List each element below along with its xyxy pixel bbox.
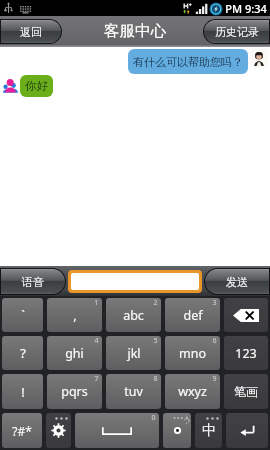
staticText: 8 (153, 374, 158, 384)
staticText: ghi (65, 345, 84, 362)
staticText: 历史记录 (215, 25, 259, 39)
button[interactable]: def (165, 298, 220, 332)
button[interactable]: pqrs (47, 374, 102, 409)
button[interactable]: 中 (195, 413, 222, 448)
staticText: 2 (153, 298, 158, 308)
staticText: 语音 (22, 275, 44, 289)
staticText: pqrs (61, 383, 88, 400)
staticText: 4 (94, 336, 99, 346)
staticText: 9 (212, 374, 217, 384)
staticText: ?#* (12, 423, 32, 439)
staticText: mno (179, 345, 206, 362)
staticText: 7 (94, 374, 99, 384)
button[interactable]: 历史记录 (204, 20, 269, 43)
button[interactable]: ` (2, 298, 43, 332)
button[interactable]: 123 (224, 336, 268, 370)
staticText: 你好 (25, 79, 48, 93)
staticText: , (73, 306, 77, 324)
staticText: jkl (127, 345, 141, 362)
staticText: abc (123, 307, 144, 324)
staticText: 中 (202, 422, 216, 440)
button[interactable]: 语音 (1, 269, 65, 294)
staticText: ? (20, 344, 26, 362)
staticText: 0 (151, 413, 156, 423)
button[interactable]: ?#* (2, 413, 42, 448)
button[interactable]: Space (75, 413, 159, 448)
staticText: def (183, 307, 203, 324)
button[interactable]: Backspace (224, 298, 268, 332)
staticText: 发送 (226, 275, 248, 289)
button[interactable]: 笔画 (224, 374, 268, 409)
staticText: tuv (124, 383, 143, 400)
button[interactable]: ? (2, 336, 43, 370)
button[interactable]: tuv (106, 374, 161, 409)
button[interactable]: Settings (46, 413, 71, 448)
staticText: ! (21, 383, 25, 401)
staticText: 客服中心 (104, 21, 166, 41)
staticText: 3 (212, 298, 217, 308)
staticText: 笔画 (234, 384, 258, 399)
staticText: 123 (235, 345, 257, 362)
button[interactable]: abc (106, 298, 161, 332)
button[interactable]: ghi (47, 336, 102, 370)
staticText: 有什么可以帮助您吗？ (133, 55, 243, 69)
button[interactable]: 返回 (1, 20, 61, 43)
button[interactable] (68, 270, 202, 293)
button[interactable]: Enter (226, 413, 268, 448)
staticText: 1 (94, 298, 99, 308)
button[interactable]: jkl (106, 336, 161, 370)
button[interactable]: mno (165, 336, 220, 370)
staticText: 6 (212, 336, 217, 346)
button[interactable]: ! (2, 374, 43, 409)
button[interactable]: , (47, 298, 102, 332)
button[interactable]: 你好 (20, 75, 53, 97)
button[interactable]: wxyz (165, 374, 220, 409)
button[interactable]: 有什么可以帮助您吗？ (128, 49, 248, 74)
staticText: 返回 (20, 25, 42, 39)
staticText: wxyz (178, 383, 207, 400)
staticText: 5 (153, 336, 158, 346)
button[interactable]: Period (163, 413, 191, 448)
staticText: PM 9:34 (225, 1, 267, 16)
button[interactable]: 发送 (205, 269, 269, 294)
staticText: ` (21, 306, 25, 324)
